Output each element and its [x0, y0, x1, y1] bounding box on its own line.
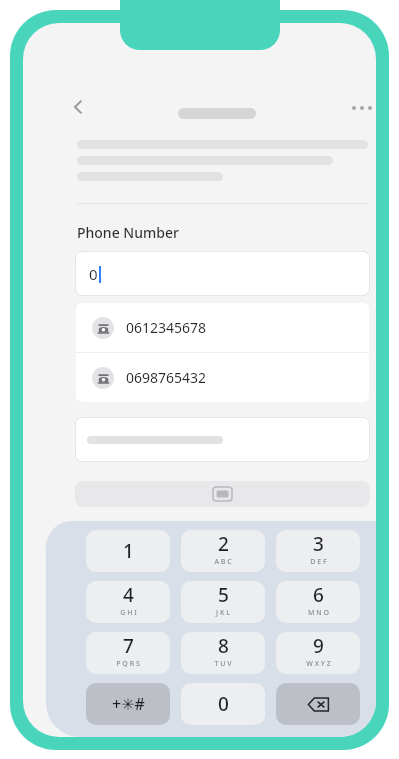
button[interactable]: Toggle keyboard	[75, 481, 370, 507]
button[interactable]: 0698765432	[76, 353, 369, 402]
staticText: 0	[89, 264, 98, 284]
button[interactable]: 8	[181, 632, 265, 674]
staticText: G H I	[120, 608, 137, 618]
staticText: +✳#	[112, 693, 145, 715]
staticText: 0612345678	[126, 318, 207, 337]
button[interactable]: +✳#	[86, 683, 170, 725]
staticText: T U V	[214, 659, 232, 669]
staticText: D E F	[310, 557, 327, 567]
button[interactable]: 0	[181, 683, 265, 725]
button[interactable]: 5	[181, 581, 265, 623]
button[interactable]: 4	[86, 581, 170, 623]
staticText: 3	[313, 531, 324, 557]
staticText: M N O	[308, 608, 329, 618]
staticText: 0	[218, 691, 229, 717]
button[interactable]: More options	[345, 95, 376, 121]
staticText: 0698765432	[126, 368, 207, 387]
staticText: A B C	[214, 557, 232, 567]
button[interactable]: Backspace	[276, 683, 360, 725]
button[interactable]: 7	[86, 632, 170, 674]
staticText: W X Y Z	[306, 659, 331, 669]
button[interactable]: Back	[61, 89, 97, 125]
button[interactable]	[75, 417, 370, 462]
button[interactable]: 2	[181, 530, 265, 572]
button[interactable]: 9	[276, 632, 360, 674]
button[interactable]: 0	[75, 251, 370, 296]
staticText: 7	[123, 633, 134, 659]
staticText: 8	[218, 633, 229, 659]
staticText: J K L	[216, 608, 230, 618]
staticText: 5	[218, 582, 229, 608]
staticText: 4	[123, 582, 134, 608]
staticText: 6	[313, 582, 324, 608]
staticText: Phone Number	[77, 223, 179, 242]
staticText: 1	[123, 538, 134, 564]
button[interactable]: 3	[276, 530, 360, 572]
staticText: 9	[313, 633, 324, 659]
staticText: P Q R S	[116, 659, 140, 669]
button[interactable]: 1	[86, 530, 170, 572]
button[interactable]: 0612345678	[76, 303, 369, 352]
staticText: 2	[218, 531, 229, 557]
button[interactable]: 6	[276, 581, 360, 623]
